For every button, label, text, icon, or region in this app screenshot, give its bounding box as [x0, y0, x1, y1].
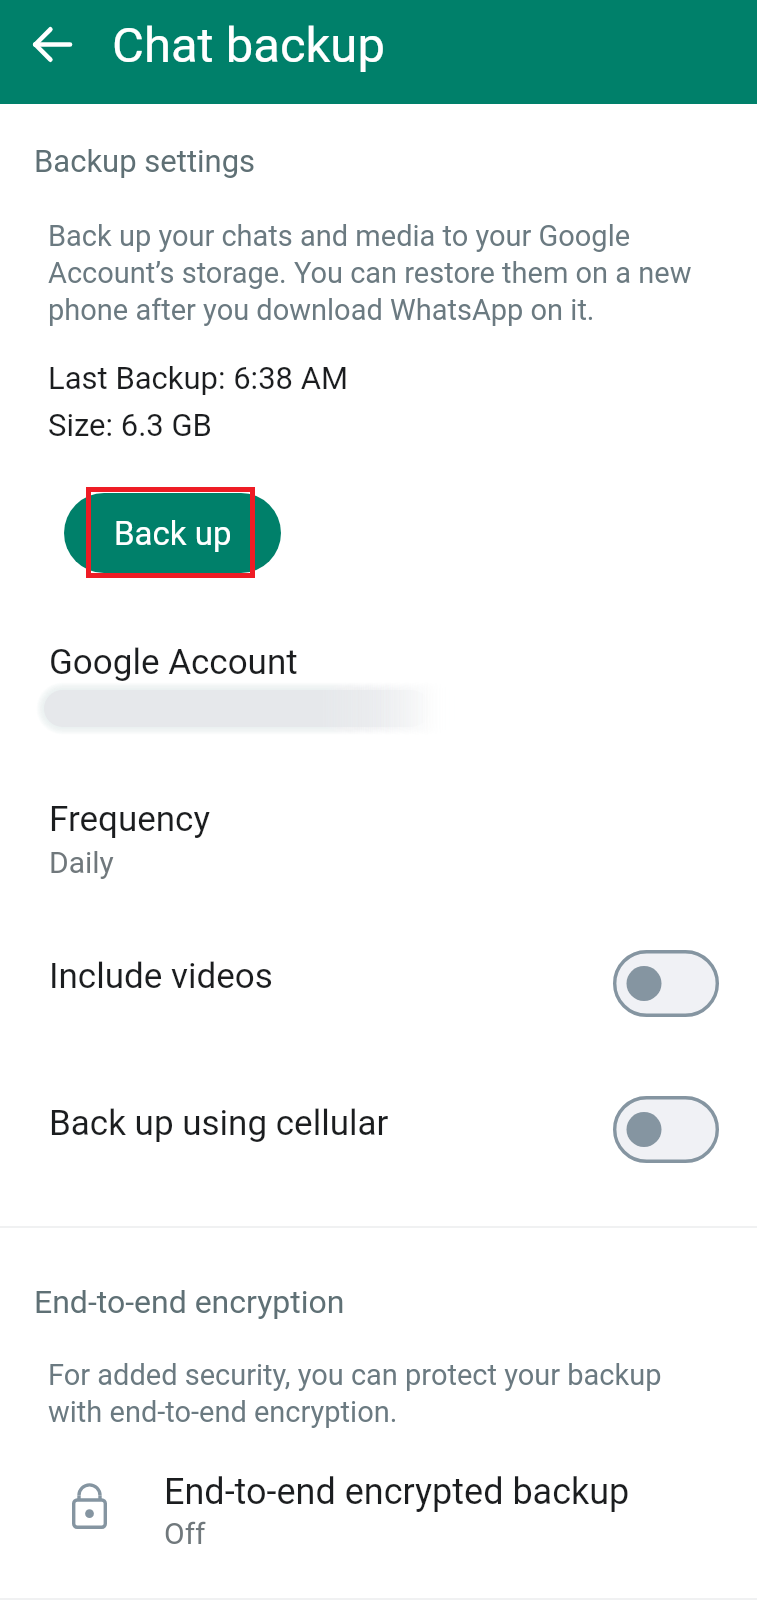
button[interactable]: Back up using cellular: [0, 1080, 757, 1179]
staticText: Daily: [49, 845, 114, 880]
button[interactable]: Include videos: [0, 934, 757, 1033]
staticText: Backup settings: [34, 143, 256, 179]
staticText: End-to-end encrypted backup: [164, 1471, 630, 1513]
staticText: Last Backup: 6:38 AM: [48, 360, 348, 396]
staticText: End-to-end encryption: [34, 1283, 345, 1321]
staticText: For added security, you can protect your…: [48, 1358, 688, 1429]
staticText: Back up using cellular: [49, 1103, 389, 1144]
staticText: Google Account: [49, 642, 298, 683]
button[interactable]: Back: [9, 2, 93, 86]
button[interactable]: End-to-end encrypted backup: [0, 1455, 757, 1565]
staticText: Frequency: [49, 799, 210, 840]
staticText: Include videos: [49, 956, 273, 997]
staticText: Chat backup: [112, 17, 385, 74]
button[interactable]: Back up: [64, 493, 281, 573]
staticText: Size: 6.3 GB: [48, 407, 212, 443]
staticText: Off: [164, 1516, 206, 1551]
staticText: Back up: [114, 514, 232, 553]
staticText: Back up your chats and media to your Goo…: [48, 219, 708, 327]
